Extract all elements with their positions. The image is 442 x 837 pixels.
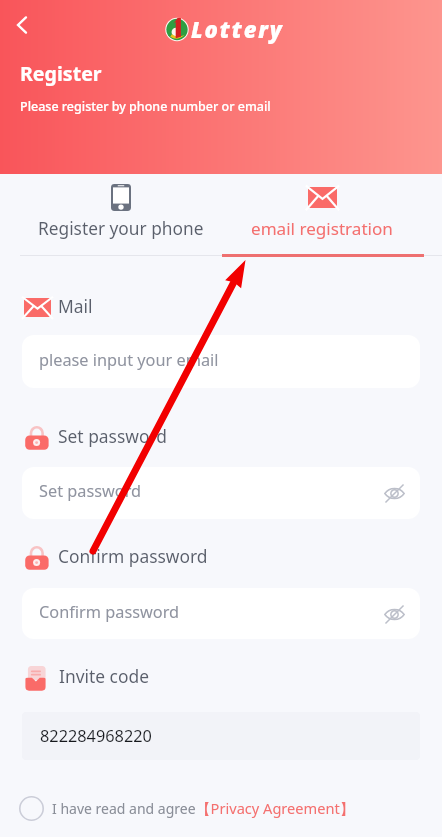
staticText: please input your email [39, 349, 219, 371]
staticText: Confirm password [58, 544, 208, 568]
staticText: Set password [39, 480, 142, 502]
button[interactable]: Show password [381, 601, 407, 627]
button[interactable]: 【Privacy Agreement】 [196, 798, 355, 818]
button[interactable]: Register your phone [20, 174, 221, 259]
button[interactable]: Agree [18, 795, 44, 821]
button[interactable]: Show password [381, 480, 407, 506]
button[interactable]: email registration [221, 174, 422, 259]
staticText: Invite code [59, 664, 149, 688]
staticText: Mail [58, 294, 93, 318]
staticText: Set password [58, 424, 167, 448]
staticText: Lottery [191, 14, 284, 44]
staticText: Register your phone [38, 217, 204, 241]
staticText: email registration [251, 217, 393, 240]
button[interactable]: Set password [22, 467, 420, 519]
staticText: Register [20, 60, 102, 87]
staticText: Please register by phone number or email [20, 98, 271, 115]
button[interactable]: 822284968220 [22, 712, 420, 760]
button[interactable]: Back [6, 9, 38, 41]
staticText: 822284968220 [40, 725, 152, 747]
button[interactable]: please input your email [22, 335, 420, 388]
button[interactable]: Confirm password [22, 588, 420, 639]
staticText: Confirm password [39, 601, 180, 623]
staticText: I have read and agree [52, 799, 196, 818]
